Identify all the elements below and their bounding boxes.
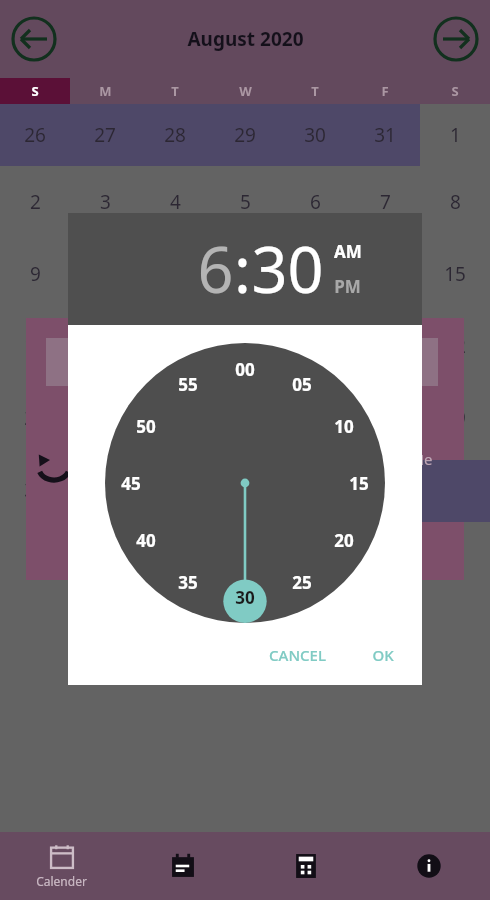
button[interactable]: 5: [420, 454, 490, 526]
staticText: CANCEL: [269, 645, 326, 665]
button[interactable]: 2: [0, 166, 70, 238]
staticText: 7: [380, 189, 391, 215]
button[interactable]: CANCEL: [255, 637, 340, 673]
button[interactable]: 30: [0, 454, 70, 526]
button[interactable]: 29: [420, 382, 490, 454]
button[interactable]: 18: [140, 310, 210, 382]
staticText: AM: [334, 240, 362, 263]
button[interactable]: 11: [140, 238, 210, 310]
button[interactable]: 15: [420, 238, 490, 310]
staticText: 8: [450, 189, 461, 215]
button[interactable]: 14: [350, 238, 420, 310]
button[interactable]: 6: [197, 226, 234, 312]
staticText: 19: [234, 333, 256, 359]
staticText: 30: [251, 226, 324, 312]
staticText: 5: [240, 189, 251, 215]
staticText: Calender: [36, 873, 87, 889]
staticText: PM: [334, 275, 361, 298]
button[interactable]: Calender: [0, 832, 122, 900]
button[interactable]: 17: [70, 310, 140, 382]
button[interactable]: Info: [367, 832, 490, 900]
staticText: 29: [444, 405, 466, 431]
staticText: 28: [164, 122, 186, 148]
button[interactable]: Previous month: [6, 11, 62, 67]
button[interactable]: Calculator: [244, 832, 367, 900]
button[interactable]: 16: [0, 310, 70, 382]
staticText: 55: [178, 373, 198, 396]
button[interactable]: 29: [210, 104, 280, 166]
staticText: 25: [292, 571, 312, 594]
button[interactable]: 12: [210, 238, 280, 310]
button[interactable]: 2: [210, 454, 280, 526]
staticText: 4: [380, 477, 391, 503]
button[interactable]: 3: [70, 166, 140, 238]
button[interactable]: 28: [140, 104, 210, 166]
button[interactable]: 31: [70, 454, 140, 526]
button[interactable]: 26: [0, 104, 70, 166]
staticText: OK: [372, 645, 394, 665]
button[interactable]: 7: [350, 166, 420, 238]
button[interactable]: 4: [140, 166, 210, 238]
button[interactable]: OK: [358, 637, 408, 673]
staticText: 30: [304, 122, 326, 148]
button[interactable]: 27: [70, 104, 140, 166]
staticText: 12: [234, 261, 256, 287]
button[interactable]: 30: [251, 226, 324, 312]
button[interactable]: 5: [210, 166, 280, 238]
button[interactable]: 20: [280, 310, 350, 382]
button[interactable]: 31: [350, 104, 420, 166]
button[interactable]: 24: [70, 382, 140, 454]
staticText: W: [239, 82, 252, 100]
button[interactable]: 19: [210, 310, 280, 382]
button[interactable]: 25: [140, 382, 210, 454]
staticText: :: [234, 226, 251, 312]
staticText: 6: [310, 189, 321, 215]
staticText: 15: [444, 261, 466, 287]
button[interactable]: AM: [334, 240, 362, 263]
staticText: 10: [334, 415, 354, 438]
button[interactable]: 9: [0, 238, 70, 310]
staticText: 18: [164, 333, 186, 359]
button[interactable]: Notes: [122, 832, 244, 900]
button[interactable]: 27: [280, 382, 350, 454]
button[interactable]: 28: [350, 382, 420, 454]
button[interactable]: 1: [420, 104, 490, 166]
staticText: 31: [374, 122, 396, 148]
button[interactable]: 8: [420, 166, 490, 238]
button[interactable]: Next month: [428, 11, 484, 67]
staticText: 4: [170, 189, 181, 215]
staticText: T: [311, 82, 319, 100]
staticText: T: [171, 82, 179, 100]
button[interactable]: 4: [350, 454, 420, 526]
button[interactable]: PM: [334, 275, 361, 298]
staticText: 29: [234, 122, 256, 148]
staticText: 35: [178, 571, 198, 594]
staticText: F: [381, 82, 389, 100]
staticText: 3: [100, 189, 111, 215]
staticText: 30: [24, 477, 46, 503]
staticText: 28: [374, 405, 396, 431]
staticText: August 2020: [187, 26, 304, 52]
button[interactable]: 23: [0, 382, 70, 454]
button[interactable]: 13: [280, 238, 350, 310]
button[interactable]: 30: [280, 104, 350, 166]
button[interactable]: 21: [350, 310, 420, 382]
staticText: 24: [94, 405, 116, 431]
staticText: 05: [292, 373, 312, 396]
staticText: 1: [450, 122, 461, 148]
button[interactable]: 6: [280, 166, 350, 238]
button[interactable]: 22: [420, 310, 490, 382]
staticText: 2: [240, 477, 251, 503]
staticText: 20: [304, 333, 326, 359]
